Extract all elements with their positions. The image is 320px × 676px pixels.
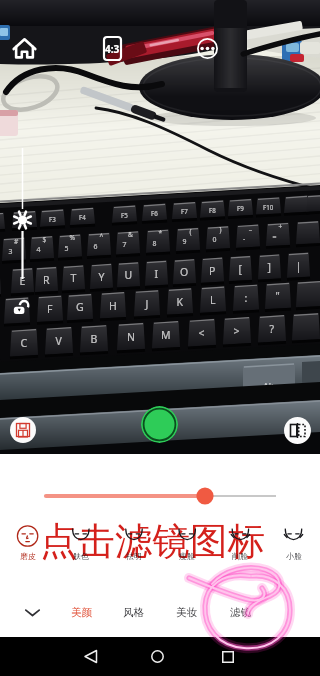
button[interactable]: 4:3 xyxy=(104,37,121,60)
button[interactable]: 瘦脸 xyxy=(169,551,205,567)
button[interactable]: 肤色 xyxy=(63,551,99,567)
button[interactable]: 风格 xyxy=(111,600,155,624)
button[interactable] xyxy=(0,486,320,508)
button[interactable]: 滤镜 xyxy=(218,600,262,624)
button[interactable]: 磨皮 xyxy=(10,551,46,567)
button[interactable]: Home xyxy=(11,35,38,62)
button[interactable]: Shutter xyxy=(141,406,178,443)
button[interactable]: Lock exposure xyxy=(13,300,30,317)
button[interactable]: Recent apps xyxy=(210,637,246,676)
button[interactable]: 美颜 xyxy=(59,600,103,624)
staticText: 美妆 xyxy=(176,606,197,619)
staticText: 祛明 xyxy=(126,551,142,561)
button[interactable]: 美妆 xyxy=(164,600,208,624)
button[interactable]: 削脸 xyxy=(222,551,258,567)
staticText: 风格 xyxy=(123,606,144,619)
button[interactable]: Collapse panel xyxy=(20,600,44,624)
staticText: 美颜 xyxy=(71,606,92,619)
staticText: 瘦脸 xyxy=(179,551,195,561)
staticText: 磨皮 xyxy=(20,551,36,561)
button[interactable]: 祛明 xyxy=(116,551,152,567)
button[interactable]: Home xyxy=(139,637,175,676)
staticText: 小脸 xyxy=(286,551,302,561)
staticText: 肤色 xyxy=(73,551,89,561)
button[interactable]: Compare before after xyxy=(284,417,311,444)
staticText: 4:3 xyxy=(105,42,120,56)
staticText: 削脸 xyxy=(232,551,248,561)
button[interactable]: More options xyxy=(197,38,218,59)
button[interactable]: 小脸 xyxy=(276,551,312,567)
staticText: 滤镜 xyxy=(230,606,251,619)
button[interactable]: Back xyxy=(72,637,108,676)
button[interactable]: Save xyxy=(10,417,36,443)
staticText: 点击滤镜图标 xyxy=(40,518,265,565)
